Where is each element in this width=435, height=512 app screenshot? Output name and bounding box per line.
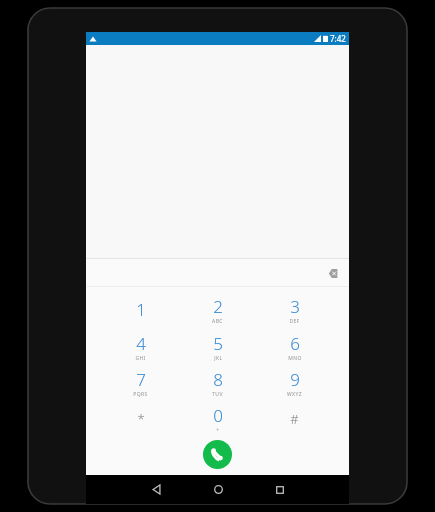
staticText: DEF	[289, 318, 300, 325]
staticText: 7	[136, 368, 146, 391]
staticText: 7:42	[330, 33, 346, 44]
staticText: 4	[136, 332, 146, 355]
button[interactable]: 0	[179, 401, 256, 437]
button[interactable]: Recent apps	[249, 475, 311, 504]
staticText: 6	[290, 332, 300, 355]
button[interactable]: 9	[256, 365, 333, 401]
button[interactable]: 2	[179, 291, 256, 328]
button[interactable]: Backspace	[321, 263, 341, 283]
staticText: 0	[213, 404, 223, 427]
staticText: 8	[213, 368, 223, 391]
button[interactable]: #	[256, 401, 333, 437]
button[interactable]: 1	[102, 291, 179, 328]
button[interactable]: 4	[102, 328, 179, 365]
staticText: MNO	[288, 355, 302, 362]
button[interactable]: *	[102, 401, 179, 437]
staticText: #	[290, 410, 299, 428]
button[interactable]: 8	[179, 365, 256, 401]
staticText: 1	[136, 298, 146, 321]
staticText: 3	[290, 295, 300, 318]
button[interactable]: 3	[256, 291, 333, 328]
staticText: 5	[213, 332, 223, 355]
button[interactable]: Back	[125, 475, 187, 504]
button[interactable]: Home	[187, 475, 249, 504]
staticText: PQRS	[133, 391, 148, 398]
staticText: WXYZ	[287, 391, 302, 398]
staticText: *	[137, 410, 145, 428]
staticText: GHI	[135, 355, 146, 362]
staticText: JKL	[214, 355, 223, 362]
button[interactable]: Call	[203, 440, 232, 469]
staticText: 2	[213, 295, 223, 318]
button[interactable]: 6	[256, 328, 333, 365]
button[interactable]: 7	[102, 365, 179, 401]
button[interactable]: 5	[179, 328, 256, 365]
staticText: 9	[290, 368, 300, 391]
staticText: TUV	[212, 391, 223, 398]
staticText: +	[216, 427, 220, 434]
staticText: ABC	[212, 318, 223, 325]
